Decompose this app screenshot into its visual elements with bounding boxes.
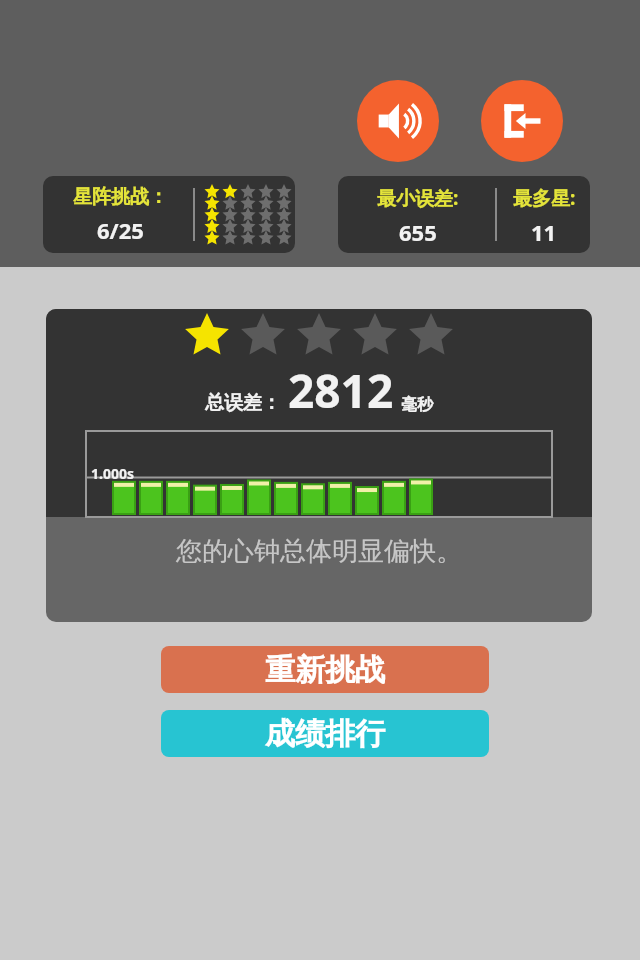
staticText: 星阵挑战： bbox=[73, 185, 168, 209]
button[interactable]: 星阵挑战： bbox=[43, 176, 295, 253]
staticText: 最小误差: bbox=[377, 185, 459, 211]
staticText: 毫秒 bbox=[401, 395, 433, 415]
staticText: 2812 bbox=[288, 359, 394, 422]
staticText: 重新挑战 bbox=[265, 651, 385, 689]
staticText: 最多星: bbox=[513, 185, 576, 211]
button[interactable]: Exit bbox=[481, 80, 563, 162]
staticText: 11 bbox=[531, 217, 557, 247]
staticText: 1.000s bbox=[91, 464, 134, 483]
button[interactable]: 总误差： bbox=[46, 309, 592, 622]
button[interactable]: Sound bbox=[357, 80, 439, 162]
staticText: 总误差： bbox=[205, 391, 281, 415]
staticText: 655 bbox=[399, 217, 437, 247]
staticText: 6/25 bbox=[97, 215, 144, 245]
button[interactable]: 最小误差: bbox=[338, 176, 590, 253]
staticText: 您的心钟总体明显偏快。 bbox=[176, 535, 462, 568]
button[interactable]: 重新挑战 bbox=[161, 646, 489, 693]
staticText: 成绩排行 bbox=[265, 715, 385, 753]
button[interactable]: 成绩排行 bbox=[161, 710, 489, 757]
